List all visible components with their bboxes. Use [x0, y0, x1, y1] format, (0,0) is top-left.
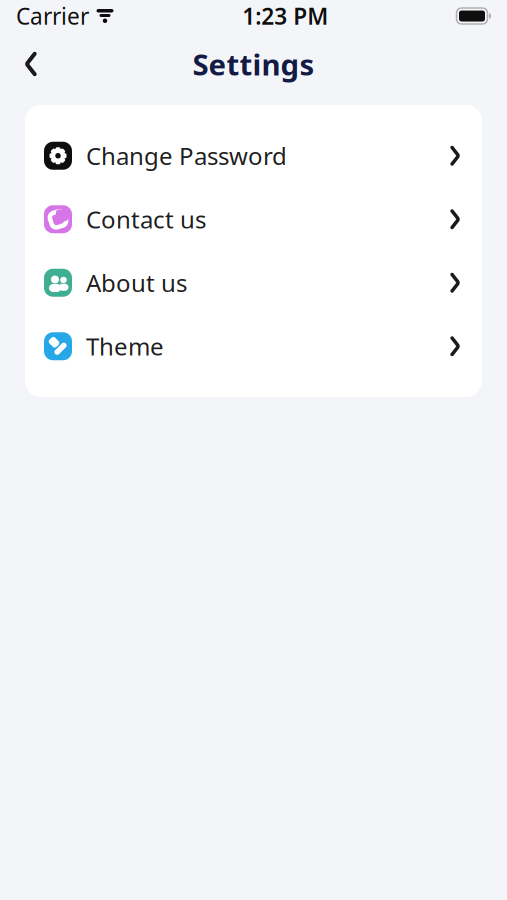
button[interactable]: About us — [25, 251, 482, 314]
button[interactable]: Theme — [25, 314, 482, 378]
button[interactable]: Back — [8, 41, 54, 87]
staticText: 1:23 PM — [242, 1, 328, 31]
staticText: Contact us — [86, 203, 206, 235]
button[interactable]: Contact us — [25, 187, 482, 251]
button[interactable]: Change Password — [25, 124, 482, 187]
staticText: Settings — [192, 44, 314, 83]
staticText: Carrier — [16, 1, 89, 31]
staticText: Change Password — [86, 140, 287, 172]
staticText: Theme — [86, 330, 164, 362]
staticText: About us — [86, 267, 187, 299]
